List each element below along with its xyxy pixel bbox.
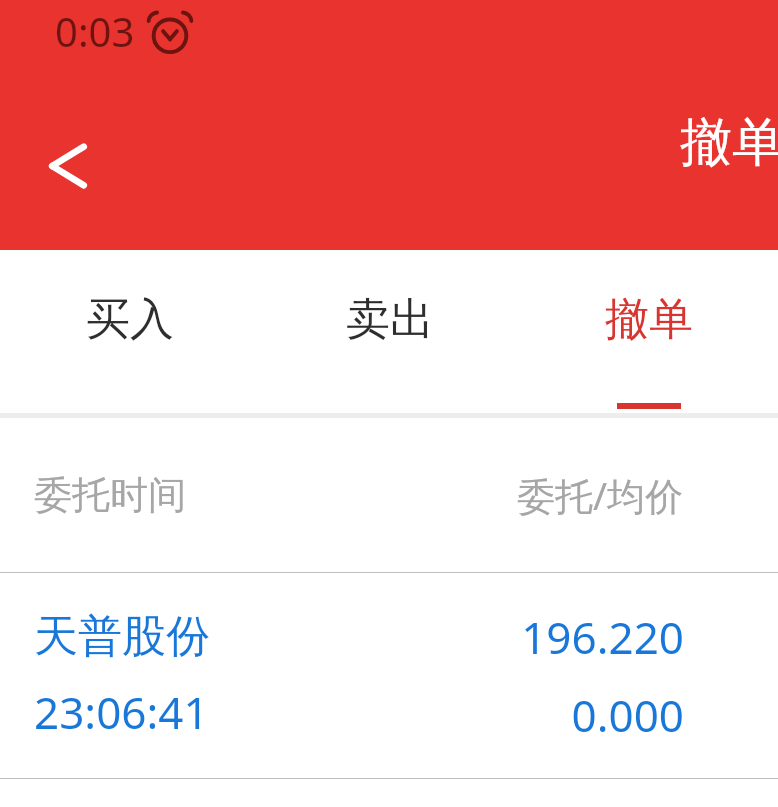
staticText: 天普股份 xyxy=(34,609,210,664)
button[interactable]: 买入 xyxy=(0,250,260,413)
staticText: 委托/均价 xyxy=(517,469,684,521)
staticText: 0.000 xyxy=(571,685,684,745)
staticText: 196.220 xyxy=(521,607,684,667)
staticText: 买入 xyxy=(86,292,174,347)
staticText: 撤单 xyxy=(680,110,778,176)
button[interactable]: 天普股份 xyxy=(0,573,778,778)
staticText: 0:03 xyxy=(55,4,135,58)
button[interactable]: 卖出 xyxy=(260,250,519,413)
button[interactable]: Back xyxy=(22,120,114,212)
staticText: 撤单 xyxy=(605,292,693,347)
button[interactable]: 撤单 xyxy=(519,250,778,413)
staticText: 23:06:41 xyxy=(34,682,209,742)
staticText: 卖出 xyxy=(346,292,434,347)
staticText: 委托时间 xyxy=(34,471,186,519)
